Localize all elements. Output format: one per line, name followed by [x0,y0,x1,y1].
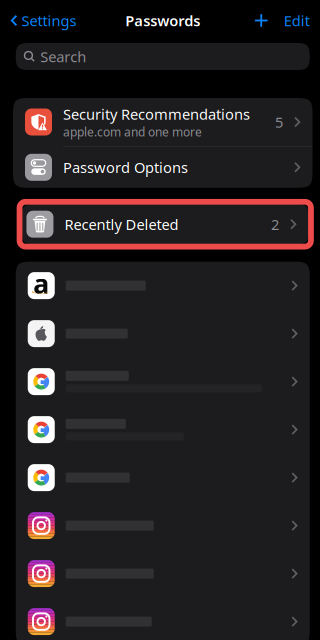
button[interactable]: Security Recommendations [13,98,312,146]
staticText: Search [40,47,86,66]
staticText: Edit [284,11,310,30]
button[interactable]: Settings [3,5,76,36]
staticText: 5 [275,112,283,132]
button[interactable]: Add password [248,7,275,34]
staticText: a [33,266,49,301]
button[interactable]: Saved password [16,550,310,598]
staticText: Settings [21,11,76,30]
button[interactable]: Recently Deleted [3,202,320,247]
staticText: Recently Deleted [64,214,178,234]
button[interactable]: Saved password [16,406,310,454]
staticText: apple.com and one more [63,124,202,140]
button[interactable]: Saved password [16,502,310,550]
button[interactable]: Password Options [13,147,312,188]
staticText: Passwords [125,11,200,30]
staticText: Password Options [63,158,188,177]
button[interactable]: Saved password [16,598,310,640]
button[interactable]: Edit [275,5,320,36]
button[interactable]: Saved password [16,262,310,310]
button[interactable]: Saved password [16,358,310,406]
button[interactable]: Saved password [16,454,310,502]
staticText: 2 [271,214,279,234]
staticText: Security Recommendations [63,104,250,124]
button[interactable]: Saved password [16,310,310,358]
